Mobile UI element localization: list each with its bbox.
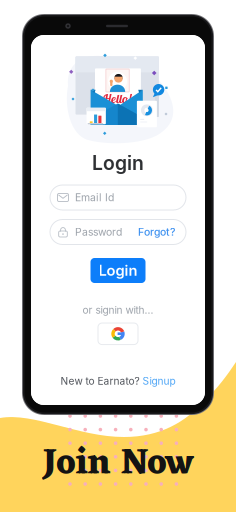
button[interactable]: Login: [90, 258, 145, 283]
staticText: Email Id: [75, 191, 114, 204]
staticText: or signin with...: [82, 304, 153, 316]
staticText: Login: [98, 262, 137, 279]
staticText: Signup: [142, 375, 175, 387]
staticText: Hello!: [103, 91, 131, 106]
staticText: Join Now: [42, 432, 193, 496]
button[interactable]: Email Id: [50, 185, 186, 210]
staticText: Login: [92, 151, 144, 175]
staticText: Password: [75, 226, 122, 238]
staticText: Forgot?: [138, 226, 175, 238]
button[interactable]: Sign in with Google: [98, 323, 138, 345]
button[interactable]: Password: [50, 219, 186, 244]
staticText: New to Earnato?: [60, 375, 139, 387]
button[interactable]: New to Earnato?: [60, 375, 175, 387]
